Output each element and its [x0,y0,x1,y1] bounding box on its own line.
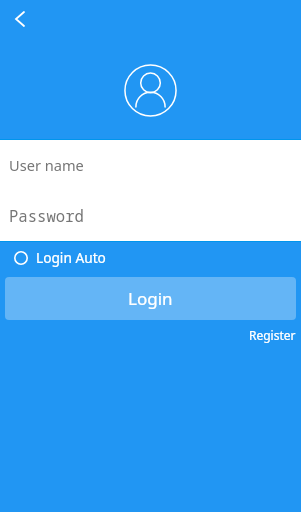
button[interactable]: Login [5,277,296,320]
staticText: Login [128,287,173,310]
staticText: Password [9,205,84,226]
button[interactable]: User name [0,140,301,190]
button[interactable]: Password [0,190,301,241]
button[interactable]: Login Auto [10,246,110,269]
button[interactable]: Back [0,0,40,40]
staticText: Login Auto [36,248,106,267]
button[interactable]: Register [245,325,300,345]
staticText: User name [9,155,84,175]
staticText: Register [249,327,296,343]
